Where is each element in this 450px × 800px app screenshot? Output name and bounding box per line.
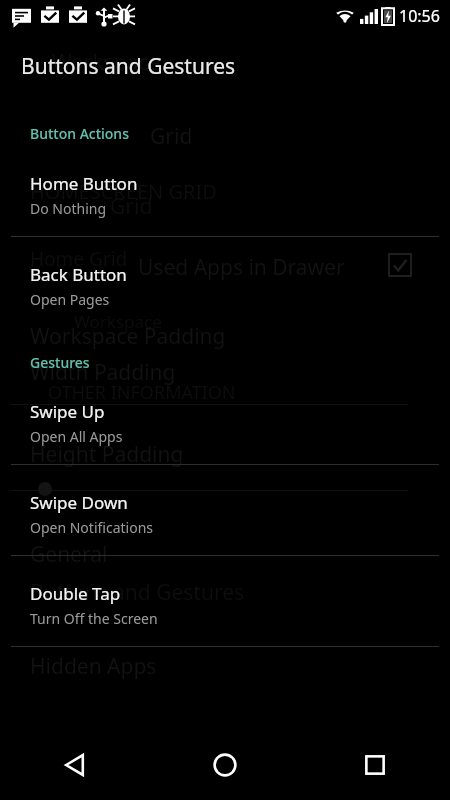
staticText: Back Button	[30, 263, 127, 286]
staticText: HOMESCREEN GRID	[30, 178, 217, 205]
staticText: Swipe Up	[30, 400, 105, 423]
staticText: OTHER INFORMATION	[48, 380, 236, 405]
staticText: Hidden Apps	[30, 652, 157, 681]
staticText: Open All Apps	[30, 427, 123, 446]
staticText: Used Apps in Drawer	[138, 253, 345, 282]
staticText: Open Pages	[30, 290, 110, 309]
button[interactable]: Swipe Down	[0, 487, 450, 553]
button[interactable]: Back	[0, 730, 150, 800]
staticText: Home Button	[30, 172, 138, 195]
button[interactable]: Back Button	[0, 259, 450, 325]
staticText: Gestures	[30, 353, 90, 372]
staticText: Double Tap	[30, 582, 121, 605]
staticText: Buttons and Gestures	[21, 52, 236, 81]
staticText: Turn Off the Screen	[30, 609, 158, 628]
staticText: Grid	[150, 122, 193, 151]
staticText: Width Padding	[30, 358, 176, 387]
staticText: Workspace Padding	[30, 322, 226, 351]
staticText: General	[30, 540, 108, 569]
button[interactable]: Recent apps	[300, 730, 450, 800]
staticText: Workspace	[74, 310, 162, 333]
staticText: Do Nothing	[30, 199, 107, 218]
button[interactable]: Double Tap	[0, 578, 450, 644]
button[interactable]: Home Button	[0, 168, 450, 234]
staticText: Home Grid	[30, 246, 128, 272]
staticText: Open Notifications	[30, 518, 154, 537]
staticText: 10:56	[399, 5, 440, 27]
button[interactable]: Home	[150, 730, 300, 800]
staticText: Swipe Down	[30, 491, 128, 514]
button[interactable]: Swipe Up	[0, 396, 450, 462]
staticText: Grid	[110, 192, 153, 221]
staticText: Height Padding	[30, 440, 184, 469]
staticText: Button Actions	[30, 124, 129, 143]
staticText: Buttons and Gestures	[30, 578, 245, 607]
staticText: Workspace	[52, 48, 161, 77]
